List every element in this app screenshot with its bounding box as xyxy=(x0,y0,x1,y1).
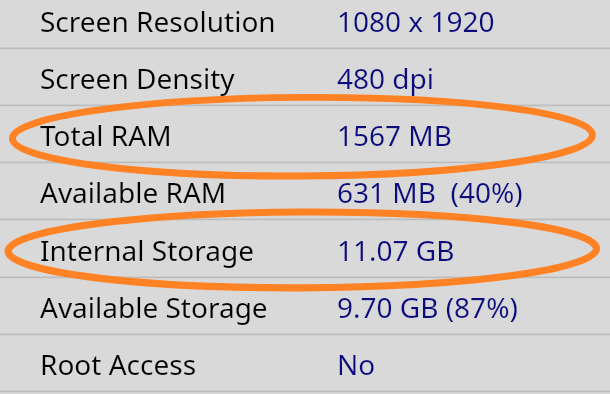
staticText: Available RAM xyxy=(40,173,227,211)
button[interactable]: Total RAM xyxy=(0,106,610,163)
button[interactable]: Available RAM xyxy=(0,163,610,220)
staticText: Root Access xyxy=(40,345,197,383)
button[interactable]: Screen Density xyxy=(0,49,610,106)
button[interactable]: Root Access xyxy=(0,335,610,392)
staticText: 631 MB (40%) xyxy=(337,173,523,211)
staticText: Total RAM xyxy=(40,116,172,154)
staticText: 1567 MB xyxy=(337,116,452,154)
staticText: No xyxy=(337,345,376,383)
staticText: 9.70 GB (87%) xyxy=(337,288,518,326)
button[interactable]: Screen Resolution xyxy=(0,0,610,49)
button[interactable]: Internal Storage xyxy=(0,221,610,278)
other: Highlighted rows: Total RAM and Internal… xyxy=(0,0,610,394)
staticText: Available Storage xyxy=(40,288,268,326)
staticText: 480 dpi xyxy=(337,59,434,97)
staticText: 11.07 GB xyxy=(337,231,455,269)
staticText: 1080 x 1920 xyxy=(337,2,495,40)
staticText: Screen Density xyxy=(40,59,235,97)
staticText: Screen Resolution xyxy=(40,2,276,40)
button[interactable]: Available Storage xyxy=(0,278,610,335)
staticText: Internal Storage xyxy=(40,231,254,269)
